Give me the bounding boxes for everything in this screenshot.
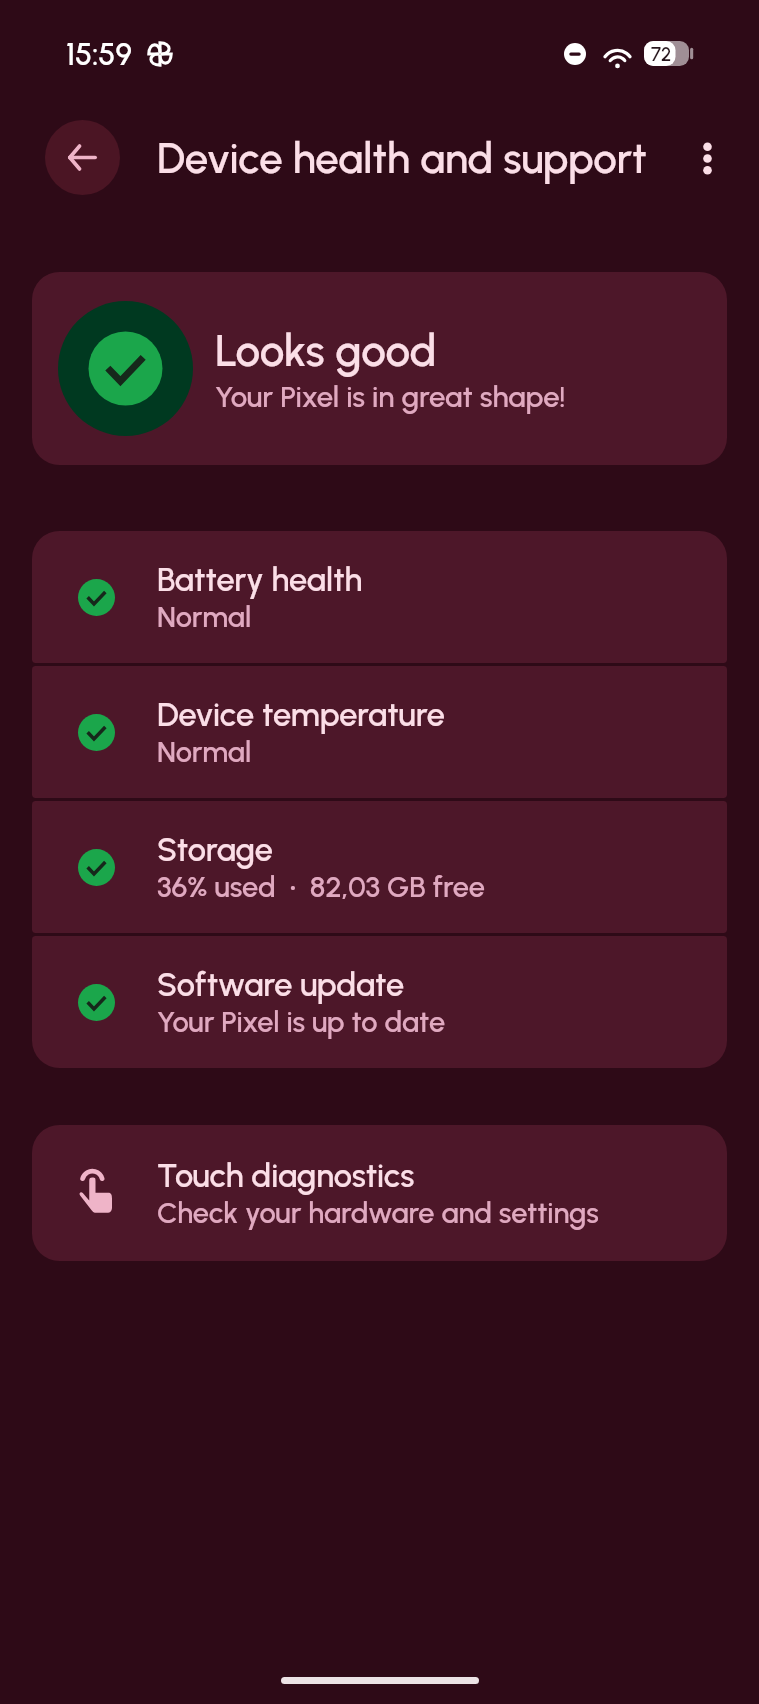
staticText: Battery health	[157, 560, 363, 599]
staticText: Looks good	[215, 324, 437, 377]
staticText: 72	[651, 43, 672, 65]
staticText: Your Pixel is up to date	[157, 1004, 446, 1039]
button[interactable]: Looks good	[32, 272, 727, 465]
staticText: Storage	[157, 830, 273, 869]
button[interactable]: Device temperature	[32, 666, 727, 798]
staticText: Device temperature	[157, 695, 445, 734]
staticText: Check your hardware and settings	[157, 1195, 599, 1230]
button[interactable]: Storage	[32, 801, 727, 933]
button[interactable]: Software update	[32, 936, 727, 1068]
button[interactable]: Battery health	[32, 531, 727, 663]
staticText: Normal	[157, 599, 252, 634]
button[interactable]: More options	[670, 121, 744, 195]
staticText: Touch diagnostics	[157, 1156, 415, 1195]
staticText: Device health and support	[157, 133, 647, 183]
staticText: 36% used • 82,03 GB free	[157, 869, 485, 904]
staticText: 15:59	[66, 36, 132, 72]
staticText: Your Pixel is in great shape!	[215, 379, 566, 414]
button[interactable]: Back	[45, 120, 120, 195]
button[interactable]: Touch diagnostics	[32, 1125, 727, 1261]
staticText: Software update	[157, 965, 405, 1004]
staticText: Normal	[157, 734, 252, 769]
